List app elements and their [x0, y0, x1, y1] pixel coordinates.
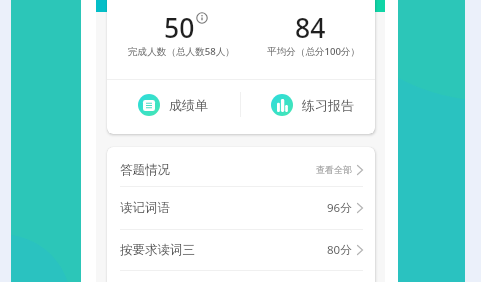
button[interactable]: 成绩单	[107, 78, 239, 132]
staticText: 按要求读词三	[120, 242, 195, 258]
staticText: 96分	[327, 200, 352, 216]
staticText: 查看全部	[316, 164, 352, 175]
staticText: 成绩单	[169, 97, 208, 113]
button[interactable]: 练习报告	[245, 78, 375, 132]
staticText: 读记词语	[120, 200, 170, 216]
button[interactable]: 答题情况	[107, 147, 375, 186]
staticText: 答题情况	[120, 162, 170, 178]
button[interactable]: 按要求读词三	[107, 230, 375, 270]
staticText: 50	[164, 10, 195, 46]
button[interactable]: 说明	[196, 12, 208, 24]
staticText: 80分	[327, 242, 352, 258]
staticText: 平均分（总分100分）	[267, 45, 361, 58]
staticText: 84	[295, 10, 326, 46]
staticText: 完成人数（总人数58人）	[128, 45, 235, 58]
staticText: 练习报告	[302, 97, 354, 113]
button[interactable]: 读记词语	[107, 187, 375, 229]
